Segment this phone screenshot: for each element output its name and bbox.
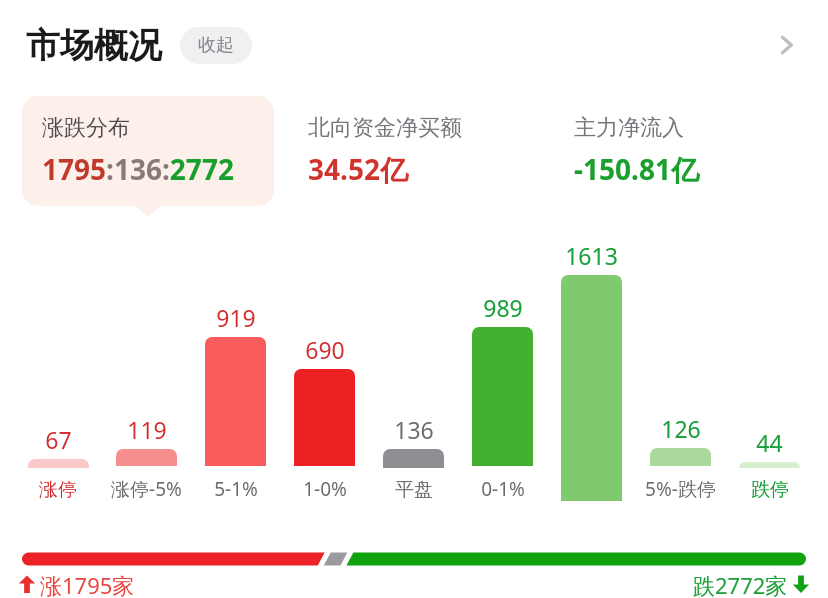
- staticText: 119: [127, 414, 167, 445]
- staticText: 1-0%: [303, 476, 347, 502]
- staticText: 收起: [198, 34, 234, 57]
- staticText: 5%-跌停: [645, 476, 716, 502]
- staticText: 平盘: [395, 478, 433, 502]
- staticText: 跌停: [751, 478, 789, 502]
- staticText: 5-1%: [214, 476, 258, 502]
- button[interactable]: 收起: [180, 27, 252, 64]
- button[interactable]: 北向资金净买额: [288, 96, 540, 206]
- staticText: 涨1795家: [40, 570, 135, 598]
- staticText: 1613: [565, 240, 618, 271]
- staticText: 跌2772家: [693, 570, 788, 598]
- staticText: 0-1%: [481, 476, 525, 502]
- staticText: 1795:136:2772: [42, 150, 234, 188]
- button[interactable]: More: [764, 23, 808, 67]
- staticText: 34.52亿: [308, 150, 408, 188]
- button[interactable]: 主力净流入: [554, 96, 806, 206]
- staticText: 市场概况: [26, 24, 162, 67]
- staticText: 涨停: [39, 478, 77, 502]
- staticText: 北向资金净买额: [308, 114, 462, 142]
- button[interactable]: 涨跌分布: [22, 96, 274, 206]
- staticText: 主力净流入: [574, 114, 684, 142]
- staticText: -150.81亿: [574, 150, 699, 188]
- staticText: 919: [216, 302, 256, 333]
- staticText: 136: [394, 414, 434, 445]
- staticText: 涨跌分布: [42, 114, 130, 142]
- staticText: 涨停-5%: [111, 476, 182, 502]
- staticText: 126: [661, 413, 701, 444]
- button[interactable]: [22, 550, 806, 568]
- staticText: 989: [483, 292, 523, 323]
- staticText: 67: [45, 424, 72, 455]
- staticText: 44: [756, 427, 783, 458]
- staticText: 690: [305, 334, 345, 365]
